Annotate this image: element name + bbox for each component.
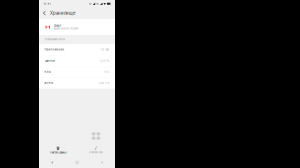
button[interactable]: Данные	[39, 55, 115, 66]
button[interactable]: Home	[64, 157, 89, 168]
staticText: Очистить данные	[49, 151, 66, 154]
button[interactable]: Приложение	[39, 44, 115, 55]
button[interactable]: Очистить кэш	[77, 144, 115, 156]
button[interactable]: Кэш	[39, 66, 115, 77]
staticText: Приложение	[45, 48, 65, 51]
staticText: Использовано места	[45, 38, 65, 41]
staticText: 5G	[96, 2, 99, 5]
staticText: 12:41	[43, 2, 50, 5]
staticText: Версия 2024.12.18.701234567	[54, 27, 79, 30]
staticText: 1,32 ГБ	[98, 81, 109, 85]
staticText: Всего	[45, 81, 54, 85]
staticText: Данные	[45, 59, 56, 62]
button[interactable]: Back	[39, 157, 64, 168]
staticText: Кэш	[45, 70, 51, 73]
staticText: 1,21 ГБ	[99, 59, 109, 62]
staticText: Хранилище	[50, 11, 75, 16]
staticText: 113 МБ	[100, 48, 109, 51]
staticText: Очистить кэш	[89, 151, 103, 154]
button[interactable]: Всего	[39, 77, 115, 89]
staticText: 5G	[89, 2, 92, 5]
staticText: 0 Б	[104, 70, 109, 73]
button[interactable]: Back	[39, 7, 50, 19]
staticText: Gmail	[54, 24, 62, 27]
button[interactable]: Очистить данные	[39, 144, 77, 156]
